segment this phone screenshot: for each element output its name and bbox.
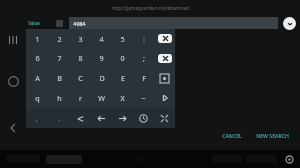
button[interactable]: Home (2, 70, 24, 92)
button[interactable]: 1 (26, 29, 48, 48)
button[interactable]: 3 (70, 29, 91, 48)
staticText: . (58, 113, 60, 123)
button[interactable]: History (133, 108, 154, 128)
button[interactable]: F (133, 68, 154, 88)
staticText: B (57, 73, 62, 83)
staticText: h (57, 93, 62, 103)
button[interactable]: 0 (112, 48, 133, 68)
staticText: http://gameguardian.net/download (112, 5, 189, 11)
staticText: NEW SEARCH (256, 132, 289, 139)
staticText: 4984 (73, 20, 86, 27)
staticText: 1 (35, 34, 40, 44)
button[interactable]: A (26, 68, 48, 88)
button[interactable]: 4984 (69, 17, 278, 29)
staticText: 2 (57, 34, 62, 44)
staticText: 4 (99, 34, 104, 44)
button[interactable]: h (48, 88, 70, 108)
staticText: q (35, 93, 40, 103)
button[interactable]: r (70, 88, 91, 108)
button[interactable]: 9 (91, 48, 112, 68)
button[interactable]: Recent apps (3, 30, 23, 50)
button[interactable]: 4 (91, 29, 112, 48)
staticText: 9 (99, 53, 104, 63)
button[interactable]: 8 (70, 48, 91, 68)
button[interactable]: Move left (91, 108, 112, 128)
button[interactable]: 2 (48, 29, 70, 48)
staticText: C (78, 73, 83, 83)
button[interactable]: X (112, 88, 133, 108)
staticText: CANCEL (222, 132, 242, 139)
staticText: F (142, 73, 146, 83)
button[interactable]: 7 (48, 48, 70, 68)
button[interactable]: Select all (154, 68, 175, 88)
button[interactable]: q (26, 88, 48, 108)
button[interactable]: Value (28, 16, 52, 30)
staticText: 7 (57, 53, 62, 63)
button[interactable]: Options (56, 20, 63, 27)
button[interactable]: D (91, 68, 112, 88)
button[interactable]: CANCEL (217, 129, 247, 142)
staticText: W (98, 93, 105, 103)
button[interactable]: , (26, 108, 48, 128)
staticText: 9999 + A.1 (135, 156, 158, 162)
staticText: Value (28, 20, 40, 26)
staticText: 5 (120, 34, 125, 44)
staticText: A (35, 73, 40, 83)
staticText: 3 (78, 34, 83, 44)
button[interactable]: Less than (70, 108, 91, 128)
button[interactable]: Move right (112, 108, 133, 128)
button[interactable]: : (133, 29, 154, 48)
button[interactable]: Backspace (154, 29, 175, 48)
button[interactable]: B (48, 68, 70, 88)
staticText: X (120, 93, 125, 103)
staticText: 6 (35, 53, 40, 63)
staticText: ; (143, 53, 145, 63)
button[interactable]: 6 (26, 48, 48, 68)
button[interactable]: Settings (285, 155, 294, 164)
button[interactable]: Forward (154, 88, 175, 108)
staticText: : (143, 34, 145, 44)
button[interactable]: W (91, 88, 112, 108)
staticText: 8 (78, 53, 83, 63)
staticText: , (36, 113, 38, 123)
staticText: r (79, 93, 82, 103)
button[interactable]: Expand (283, 17, 296, 30)
button[interactable]: ~ (133, 88, 154, 108)
staticText: ~ (141, 93, 146, 103)
button[interactable]: Collapse (154, 108, 175, 128)
button[interactable]: ; (133, 48, 154, 68)
staticText: 0 (120, 53, 125, 63)
button[interactable]: 5 (112, 29, 133, 48)
button[interactable]: Clear (154, 48, 175, 68)
button[interactable]: NEW SEARCH (251, 129, 294, 142)
button[interactable]: E (112, 68, 133, 88)
staticText: D (99, 73, 105, 83)
staticText: E (121, 73, 125, 83)
button[interactable]: C (70, 68, 91, 88)
button[interactable]: Back (2, 117, 24, 139)
